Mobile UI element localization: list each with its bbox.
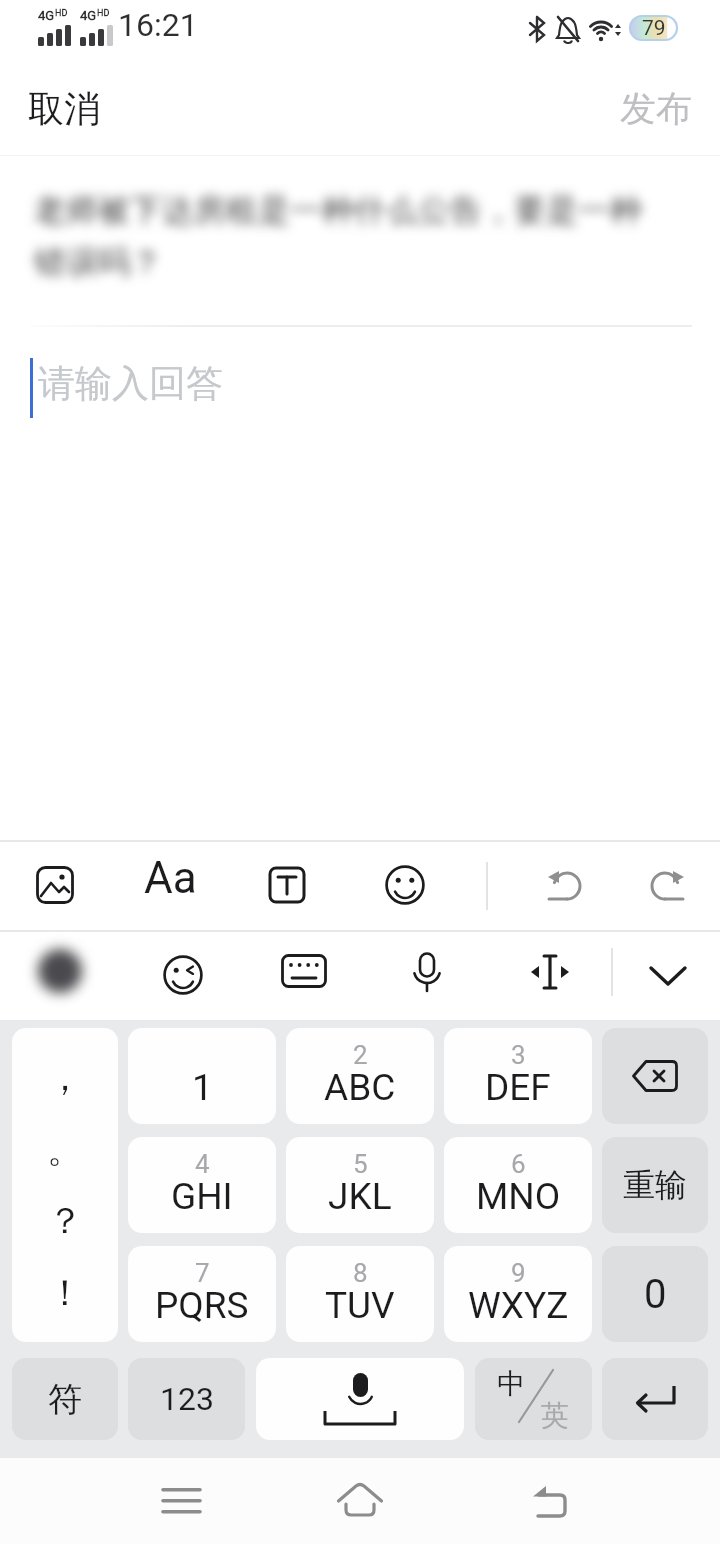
staticText: 16:21: [118, 6, 198, 44]
button[interactable]: 0: [602, 1246, 708, 1342]
staticText: ABC: [324, 1066, 396, 1109]
staticText: 1: [192, 1066, 213, 1109]
staticText: MNO: [476, 1175, 561, 1218]
staticText: 8: [353, 1258, 368, 1288]
button[interactable]: 1: [128, 1028, 276, 1124]
button[interactable]: [140, 1468, 224, 1534]
button[interactable]: 123: [128, 1358, 245, 1440]
button[interactable]: [26, 856, 84, 914]
button[interactable]: 2: [286, 1028, 434, 1124]
staticText: 符: [48, 1378, 82, 1421]
staticText: TUV: [325, 1284, 395, 1327]
staticText: DEF: [485, 1066, 551, 1109]
button[interactable]: 5: [286, 1137, 434, 1233]
button[interactable]: Aa: [138, 852, 208, 916]
button[interactable]: 7: [128, 1246, 276, 1342]
button[interactable]: 3: [444, 1028, 592, 1124]
staticText: 3: [511, 1040, 526, 1070]
staticText: 请输入回答: [38, 360, 223, 407]
staticText: ，: [47, 1055, 83, 1100]
button[interactable]: 取消: [8, 68, 138, 148]
button[interactable]: [638, 944, 698, 1000]
button[interactable]: [518, 944, 582, 1000]
staticText: WXYZ: [468, 1284, 569, 1327]
button[interactable]: 发布: [600, 68, 712, 148]
button[interactable]: [404, 944, 450, 1000]
staticText: JKL: [328, 1175, 392, 1218]
staticText: GHI: [171, 1175, 233, 1218]
staticText: 9: [511, 1258, 526, 1288]
staticText: 4: [195, 1149, 210, 1179]
staticText: 79: [642, 16, 666, 40]
button[interactable]: 请输入回答: [0, 340, 720, 838]
staticText: 6: [511, 1149, 526, 1179]
staticText: 2: [353, 1040, 368, 1070]
staticText: 。: [47, 1127, 83, 1172]
staticText: 中: [497, 1366, 525, 1401]
button[interactable]: [258, 856, 316, 914]
button[interactable]: 4: [128, 1137, 276, 1233]
staticText: HD: [97, 8, 110, 19]
button[interactable]: 中: [475, 1358, 592, 1440]
staticText: 123: [160, 1380, 214, 1418]
button[interactable]: ，: [12, 1028, 118, 1342]
button[interactable]: 8: [286, 1246, 434, 1342]
staticText: 发布: [620, 86, 692, 131]
staticText: 重输: [623, 1165, 687, 1205]
button[interactable]: [376, 856, 434, 914]
staticText: 取消: [28, 86, 100, 131]
button[interactable]: [272, 942, 336, 1000]
staticText: HD: [55, 8, 68, 19]
button[interactable]: [602, 1358, 708, 1440]
staticText: 4G: [38, 8, 55, 23]
button[interactable]: 符: [12, 1358, 118, 1440]
button[interactable]: 6: [444, 1137, 592, 1233]
button[interactable]: [536, 856, 594, 914]
button[interactable]: 重输: [602, 1137, 708, 1233]
button[interactable]: [318, 1466, 402, 1536]
button[interactable]: [508, 1466, 592, 1536]
staticText: 0: [644, 1271, 667, 1318]
button[interactable]: [256, 1358, 464, 1440]
button[interactable]: [34, 944, 86, 998]
staticText: 老师被下达房租是一种什么公告，要是一种 错误吗？: [34, 190, 642, 282]
staticText: 4G: [80, 8, 97, 23]
button[interactable]: [636, 856, 694, 914]
button[interactable]: [154, 946, 212, 1004]
staticText: ！: [47, 1270, 83, 1315]
staticText: PQRS: [155, 1284, 249, 1327]
button[interactable]: [602, 1028, 708, 1124]
staticText: 5: [353, 1149, 368, 1179]
button[interactable]: 9: [444, 1246, 592, 1342]
staticText: 英: [541, 1398, 569, 1433]
staticText: ？: [47, 1198, 83, 1243]
staticText: 7: [195, 1258, 210, 1288]
staticText: Aa: [144, 852, 197, 904]
